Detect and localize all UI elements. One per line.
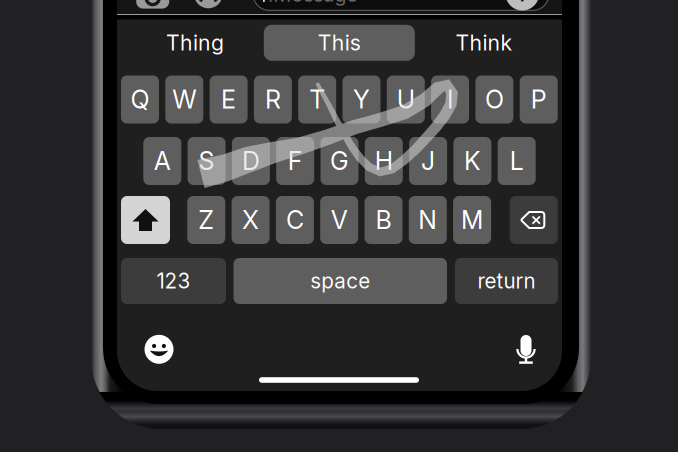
button[interactable]: return — [455, 258, 558, 304]
staticText: Thing — [166, 30, 224, 56]
button[interactable]: V — [320, 196, 358, 244]
staticText: space — [310, 268, 370, 293]
staticText: X — [242, 205, 259, 235]
staticText: W — [172, 84, 196, 115]
staticText: N — [418, 205, 437, 235]
button[interactable]: B — [364, 196, 402, 244]
button[interactable]: R — [254, 75, 292, 123]
button[interactable]: Camera — [136, 0, 169, 9]
staticText: R — [265, 84, 281, 115]
staticText: T — [309, 84, 325, 115]
staticText: return — [477, 268, 535, 293]
button[interactable]: Y — [342, 75, 380, 123]
staticText: Z — [198, 205, 214, 235]
button[interactable]: K — [453, 137, 491, 185]
button[interactable]: P — [520, 75, 558, 123]
staticText: E — [221, 84, 236, 115]
button[interactable]: Shift — [121, 196, 170, 244]
staticText: F — [288, 146, 303, 176]
button[interactable]: Thing — [121, 25, 269, 61]
staticText: C — [286, 205, 304, 235]
button[interactable]: E — [210, 75, 248, 123]
staticText: 123 — [156, 268, 190, 293]
staticText: O — [485, 84, 504, 115]
staticText: Q — [130, 84, 149, 115]
button[interactable]: W — [165, 75, 203, 123]
staticText: iMessage — [268, 0, 358, 7]
button[interactable]: Send — [505, 0, 539, 10]
button[interactable]: Q — [121, 75, 159, 123]
button[interactable]: F — [276, 137, 314, 185]
button[interactable]: Delete — [510, 196, 558, 244]
staticText: J — [421, 146, 435, 176]
button[interactable]: O — [475, 75, 513, 123]
button[interactable]: App Store — [194, 0, 223, 8]
button[interactable]: N — [409, 196, 447, 244]
staticText: B — [375, 205, 391, 235]
button[interactable]: G — [320, 137, 358, 185]
staticText: Think — [455, 30, 512, 56]
staticText: S — [199, 146, 215, 176]
staticText: I — [447, 84, 453, 115]
button[interactable]: space — [233, 258, 447, 304]
staticText: G — [330, 146, 349, 176]
staticText: P — [531, 84, 547, 115]
staticText: This — [318, 30, 361, 56]
button[interactable]: M — [453, 196, 491, 244]
button[interactable]: Z — [187, 196, 225, 244]
button[interactable]: J — [409, 137, 447, 185]
button[interactable]: U — [387, 75, 425, 123]
button[interactable]: Dictate — [515, 335, 537, 364]
button[interactable]: I — [431, 75, 469, 123]
button[interactable]: D — [232, 137, 270, 185]
staticText: D — [242, 146, 260, 176]
staticText: Y — [353, 84, 370, 115]
staticText: M — [461, 205, 483, 235]
button[interactable]: X — [232, 196, 270, 244]
button[interactable]: S — [188, 137, 226, 185]
button[interactable]: L — [498, 137, 536, 185]
staticText: A — [154, 146, 171, 176]
button[interactable]: This — [264, 25, 415, 61]
button[interactable]: Think — [410, 25, 558, 61]
staticText: H — [375, 146, 393, 176]
button[interactable]: H — [365, 137, 403, 185]
button[interactable]: A — [143, 137, 181, 185]
staticText: V — [331, 205, 348, 235]
button[interactable]: T — [298, 75, 336, 123]
button[interactable]: Emoji keyboard — [144, 335, 173, 364]
staticText: L — [510, 146, 524, 176]
button[interactable]: C — [276, 196, 314, 244]
staticText: U — [397, 84, 415, 115]
button[interactable]: 123 — [121, 258, 226, 304]
staticText: K — [464, 146, 481, 176]
